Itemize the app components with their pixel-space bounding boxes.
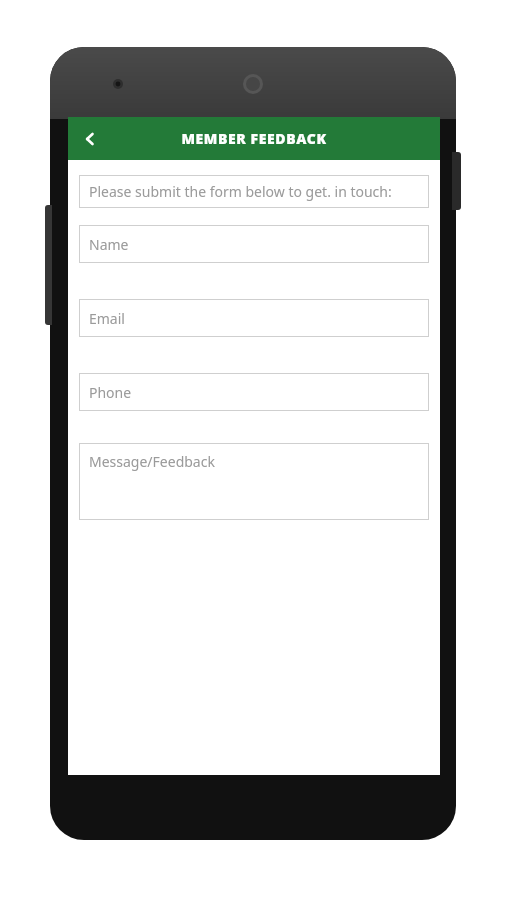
- staticText: Phone: [89, 383, 132, 402]
- button[interactable]: Back: [68, 117, 112, 160]
- staticText: Message/Feedback: [89, 452, 215, 471]
- button[interactable]: Phone: [79, 373, 429, 411]
- button[interactable]: Message/Feedback: [79, 443, 429, 520]
- staticText: MEMBER FEEDBACK: [181, 129, 327, 148]
- staticText: Email: [89, 309, 125, 328]
- button[interactable]: Name: [79, 225, 429, 263]
- staticText: Please submit the form below to get. in …: [89, 182, 392, 201]
- button[interactable]: Email: [79, 299, 429, 337]
- button[interactable]: Please submit the form below to get. in …: [79, 175, 429, 208]
- staticText: Name: [89, 235, 129, 254]
